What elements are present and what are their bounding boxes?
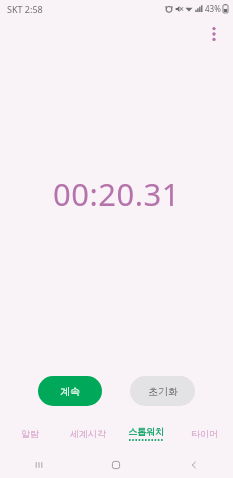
button[interactable]: 타이머 [175,422,233,444]
button[interactable]: Recent apps [0,452,77,478]
staticText: 43% [205,3,221,14]
button[interactable]: 계속 [38,376,102,406]
button[interactable]: 세계시각 [59,422,117,444]
button[interactable]: 초기화 [130,376,195,406]
button[interactable]: More options [199,19,229,49]
staticText: 계속 [60,385,80,398]
button[interactable]: 알람 [0,422,59,444]
button[interactable]: 스톱워치 [117,422,175,444]
staticText: 초기화 [148,385,178,398]
staticText: 타이머 [191,428,218,439]
staticText: 세계시각 [70,428,106,439]
button[interactable]: Home [77,452,155,478]
button[interactable]: Back [155,452,233,478]
staticText: SKT 2:58 [7,3,43,15]
staticText: 스톱워치 [128,426,164,437]
staticText: 알람 [21,428,39,439]
staticText: 00:20.31 [53,173,181,215]
